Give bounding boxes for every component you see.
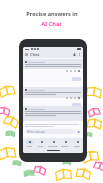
button[interactable] (72, 77, 81, 81)
button[interactable]: Chat (23, 138, 35, 149)
button[interactable] (72, 103, 81, 107)
staticText: AI Chat (41, 20, 62, 28)
staticText: Search (61, 145, 69, 148)
staticText: Scan (38, 145, 44, 148)
button[interactable] (66, 70, 68, 72)
staticText: Translate (48, 145, 58, 148)
staticText: Precise answers in (26, 10, 78, 18)
button[interactable]: Write message (25, 129, 75, 134)
staticText: Exam (74, 145, 80, 148)
staticText: Chat (27, 145, 32, 148)
button[interactable]: Send (77, 130, 81, 134)
button[interactable] (74, 70, 76, 72)
button[interactable]: Profile (73, 53, 76, 56)
button[interactable]: Menu (25, 53, 28, 56)
button[interactable]: Scan (35, 138, 47, 149)
button[interactable]: Translate (47, 138, 59, 149)
staticText: Write message (27, 130, 46, 134)
button[interactable] (70, 70, 72, 72)
staticText: Chat (30, 52, 40, 58)
button[interactable]: Search (59, 138, 71, 149)
button[interactable]: More options (78, 53, 81, 56)
button[interactable]: Exam (71, 138, 83, 149)
